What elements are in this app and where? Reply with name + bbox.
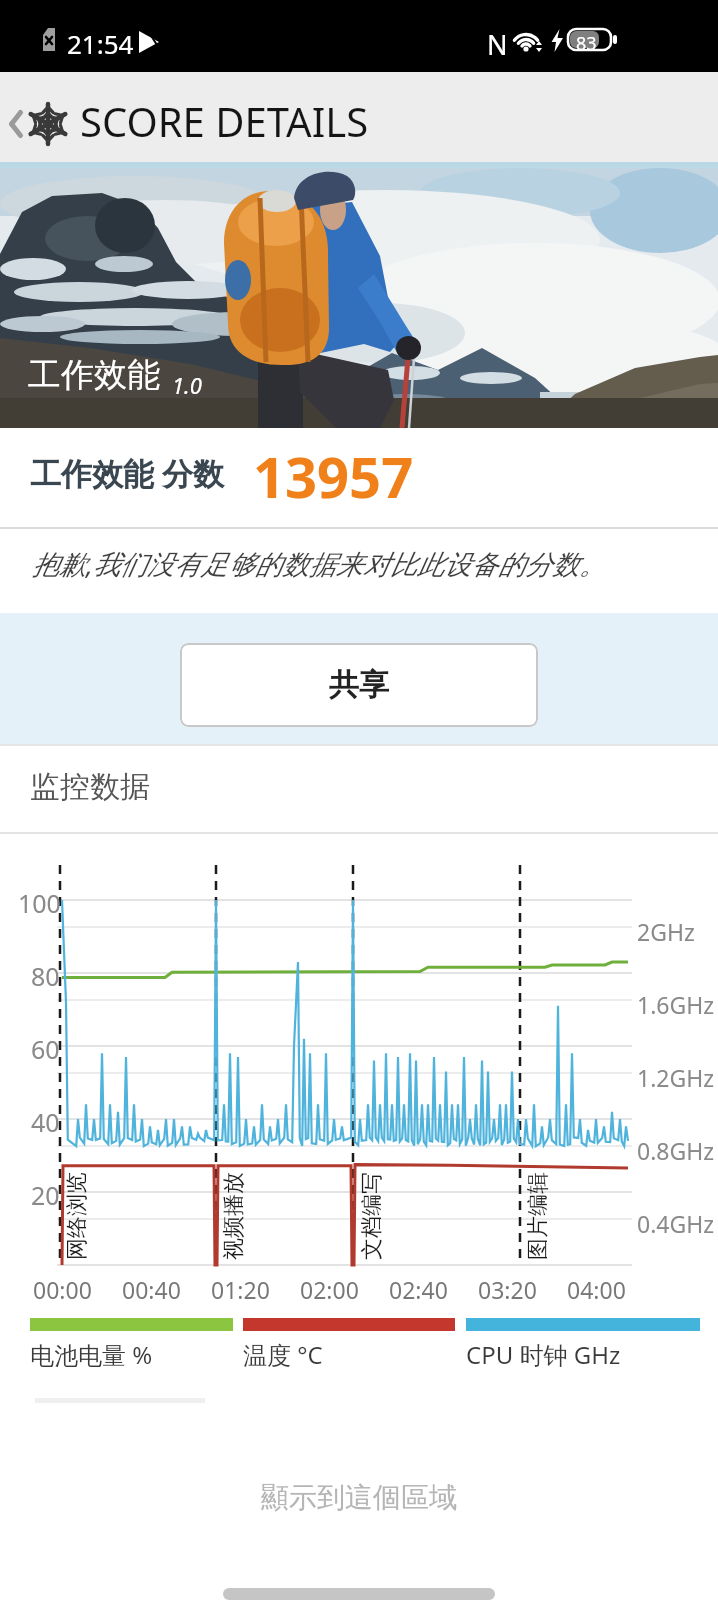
staticText: 40	[31, 1105, 60, 1139]
button[interactable]: SCORE DETAILS	[0, 72, 718, 162]
staticText: 网络浏览	[63, 1172, 91, 1260]
staticText: 图片编辑	[524, 1172, 552, 1260]
staticText: 13957	[253, 438, 414, 514]
staticText: SCORE DETAILS	[80, 94, 369, 148]
staticText: 20	[31, 1178, 60, 1212]
staticText: 0.8GHz	[637, 1135, 715, 1166]
staticText: 00:00	[33, 1274, 92, 1305]
staticText: 00:40	[122, 1274, 181, 1305]
staticText: 100	[18, 886, 61, 920]
staticText: 01:20	[211, 1274, 270, 1305]
staticText: 2GHz	[637, 916, 695, 947]
staticText: 83	[576, 31, 597, 56]
staticText: 工作效能	[28, 354, 160, 396]
staticText: 02:40	[389, 1274, 448, 1305]
staticText: 04:00	[567, 1274, 626, 1305]
staticText: 1.2GHz	[637, 1062, 715, 1093]
staticText: 文档编写	[358, 1172, 386, 1260]
button[interactable]: 工作效能	[0, 168, 718, 428]
staticText: 02:00	[300, 1274, 359, 1305]
staticText: 电池电量 %	[30, 1338, 153, 1371]
staticText: N	[487, 26, 508, 63]
staticText: 工作效能 分数	[30, 452, 225, 494]
staticText: 21:54	[67, 26, 134, 61]
staticText: 监控数据	[30, 768, 150, 806]
staticText: 80	[31, 959, 60, 993]
staticText: CPU 时钟 GHz	[466, 1338, 621, 1371]
staticText: 共享	[329, 666, 389, 704]
staticText: 0.4GHz	[637, 1208, 715, 1239]
staticText: 视频播放	[220, 1172, 248, 1260]
staticText: 03:20	[478, 1274, 537, 1305]
staticText: 温度 °C	[243, 1338, 323, 1371]
button[interactable]: 共享	[180, 643, 538, 727]
staticText: 1.6GHz	[637, 989, 715, 1020]
staticText: 抱歉,我们没有足够的数据来对比此设备的分数。	[32, 545, 606, 582]
staticText: 1.0	[172, 370, 202, 400]
staticText: 60	[31, 1032, 60, 1066]
staticText: 顯示到這個區域	[261, 1480, 457, 1515]
